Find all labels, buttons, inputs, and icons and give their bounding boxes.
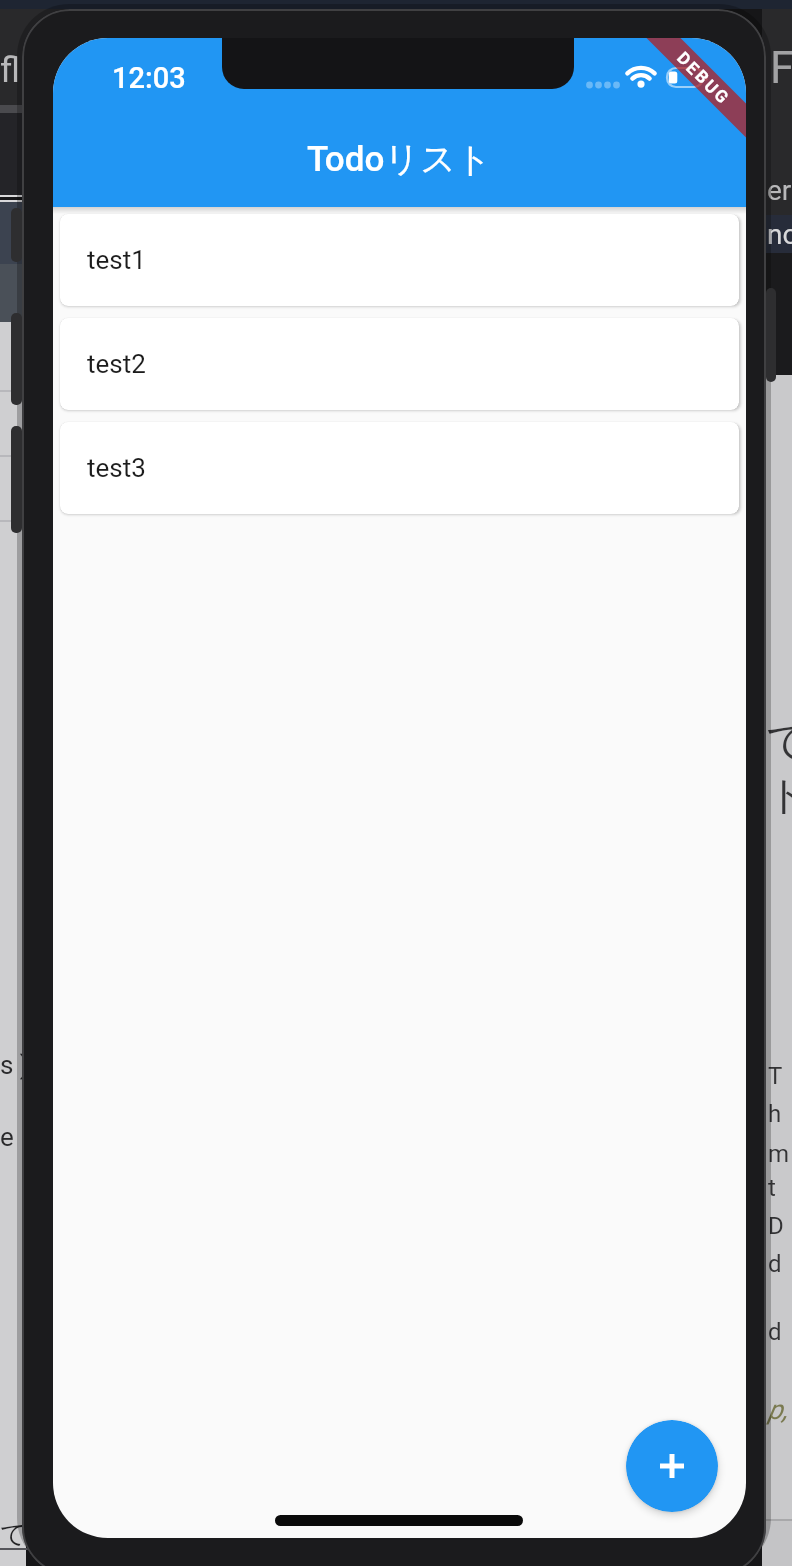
staticText: no: [767, 218, 792, 251]
staticText: e: [0, 1122, 14, 1152]
staticText: て保: [0, 1518, 53, 1551]
staticText: h: [768, 1100, 782, 1128]
staticText: D: [768, 1212, 784, 1240]
staticText: d: [768, 1250, 782, 1278]
staticText: test2: [87, 349, 146, 379]
staticText: d: [768, 1318, 782, 1346]
staticText: test1: [87, 245, 146, 275]
staticText: T: [768, 1062, 783, 1090]
staticText: t: [768, 1174, 776, 1202]
staticText: 12:03: [112, 61, 186, 94]
staticText: Todoリスト: [307, 137, 492, 181]
staticText: F: [770, 42, 792, 94]
staticText: test3: [87, 453, 146, 483]
staticText: s ): [0, 1050, 29, 1080]
staticText: er: [767, 174, 792, 207]
staticText: flu: [0, 50, 40, 91]
staticText: m: [768, 1140, 790, 1168]
staticText: p,: [768, 1394, 788, 1426]
staticText: て: [766, 714, 792, 769]
staticText: ド: [768, 770, 792, 820]
